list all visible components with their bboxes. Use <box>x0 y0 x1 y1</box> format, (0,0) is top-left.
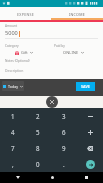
staticText: Description <box>5 68 24 73</box>
staticText: Category <box>5 44 19 48</box>
staticText: . <box>63 160 65 168</box>
staticText: Gift <box>21 50 28 55</box>
staticText: Amount <box>5 24 18 28</box>
button[interactable]: 2 <box>25 108 51 124</box>
button[interactable]: , <box>0 156 25 172</box>
button[interactable]: Back <box>0 172 35 183</box>
staticText: 1 <box>11 112 15 120</box>
button[interactable]: 7 <box>0 140 25 156</box>
button[interactable]: Close <box>46 96 58 108</box>
button[interactable]: 8 <box>25 140 51 156</box>
staticText: INCOME <box>69 12 86 17</box>
button[interactable]: INCOME <box>51 7 103 22</box>
button[interactable]: 4 <box>0 124 25 140</box>
staticText: 5 <box>36 128 40 136</box>
staticText: SAVE <box>81 84 90 89</box>
button[interactable]: . <box>51 156 77 172</box>
button[interactable]: 0 <box>25 156 51 172</box>
button[interactable]: 5 <box>25 124 51 140</box>
staticText: 8 <box>36 144 40 152</box>
button[interactable]: Home <box>35 172 69 183</box>
button[interactable]: 3 <box>51 108 77 124</box>
staticText: 4 <box>11 128 15 136</box>
button[interactable]: enter <box>77 156 103 172</box>
button[interactable]: plus <box>77 124 103 140</box>
staticText: 9 <box>62 144 66 152</box>
staticText: 5000 <box>5 29 18 37</box>
button[interactable]: SAVE <box>76 82 95 91</box>
button[interactable]: Gift <box>5 50 51 55</box>
button[interactable]: 9 <box>51 140 77 156</box>
staticText: EXPENSE <box>17 12 35 17</box>
button[interactable]: EXPENSE <box>0 7 51 22</box>
staticText: ONLINE <box>63 50 79 55</box>
button[interactable]: minus <box>77 108 103 124</box>
staticText: 6 <box>62 128 66 136</box>
staticText: 7 <box>11 144 15 152</box>
staticText: , <box>12 160 14 168</box>
staticText: Notes (Optional) <box>5 59 30 63</box>
button[interactable]: Today <box>2 81 24 91</box>
staticText: 2 <box>36 112 40 120</box>
staticText: 3 <box>62 112 66 120</box>
button[interactable]: ONLINE <box>51 50 98 55</box>
button[interactable]: 1 <box>0 108 25 124</box>
staticText: 0 <box>36 160 40 168</box>
staticText: Today <box>8 84 18 89</box>
staticText: Paid by <box>54 44 65 48</box>
button[interactable]: back <box>77 140 103 156</box>
button[interactable]: 6 <box>51 124 77 140</box>
button[interactable]: Recents <box>69 172 103 183</box>
